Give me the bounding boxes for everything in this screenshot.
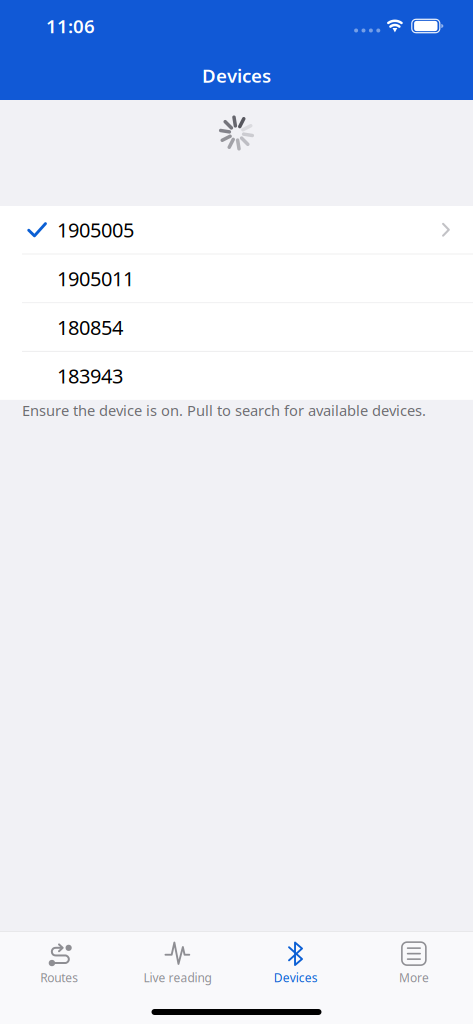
- staticText: 1905011: [57, 265, 134, 292]
- button[interactable]: Routes: [0, 932, 118, 987]
- staticText: Routes: [40, 970, 78, 985]
- staticText: Live reading: [143, 970, 211, 985]
- button[interactable]: More: [355, 932, 473, 987]
- staticText: 11:06: [46, 14, 95, 38]
- button[interactable]: 1905005: [0, 206, 473, 253]
- button[interactable]: 180854: [0, 303, 473, 351]
- button[interactable]: 183943: [0, 352, 473, 400]
- staticText: 183943: [57, 363, 123, 389]
- staticText: 1905005: [57, 216, 134, 243]
- staticText: 180854: [57, 314, 123, 340]
- staticText: More: [399, 970, 429, 985]
- button[interactable]: 1905011: [0, 255, 473, 302]
- button[interactable]: Devices: [236, 932, 355, 987]
- staticText: Ensure the device is on. Pull to search …: [22, 401, 426, 420]
- staticText: Devices: [274, 970, 318, 985]
- button[interactable]: Live reading: [118, 932, 236, 987]
- staticText: Devices: [202, 63, 271, 88]
